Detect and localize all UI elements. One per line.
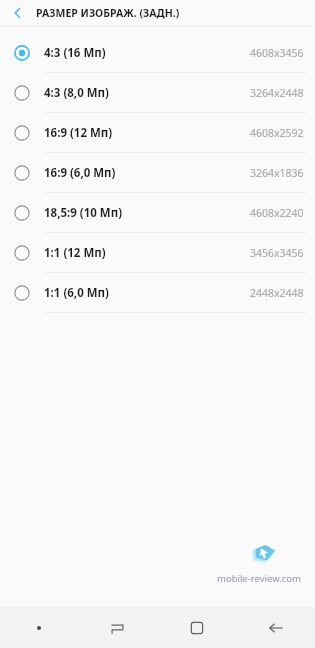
button[interactable]: 1:1 (6,0 Мп) (0, 273, 315, 312)
button[interactable]: 4:3 (16 Мп) (0, 33, 315, 72)
staticText: 4608x2592 (250, 126, 304, 140)
staticText: 4608x3456 (250, 46, 304, 60)
staticText: 16:9 (6,0 Мп) (44, 165, 116, 181)
staticText: 4:3 (16 Мп) (44, 45, 106, 61)
button[interactable]: 16:9 (6,0 Мп) (0, 153, 315, 192)
staticText: РАЗМЕР ИЗОБРАЖ. (ЗАДН.) (36, 6, 180, 20)
staticText: mobile-review.com (217, 572, 301, 585)
staticText: 2448x2448 (250, 286, 304, 300)
staticText: 18,5:9 (10 Мп) (44, 205, 123, 221)
button[interactable]: Back (236, 607, 315, 648)
staticText: 4608x2240 (250, 206, 304, 220)
button[interactable]: 1:1 (12 Мп) (0, 233, 315, 272)
staticText: 4:3 (8,0 Мп) (44, 85, 109, 101)
button[interactable]: 16:9 (12 Мп) (0, 113, 315, 152)
staticText: 1:1 (6,0 Мп) (44, 285, 109, 301)
button[interactable]: 18,5:9 (10 Мп) (0, 193, 315, 232)
staticText: 1:1 (12 Мп) (44, 245, 106, 261)
staticText: 3264x1836 (250, 166, 304, 180)
staticText: 3456x3456 (250, 246, 304, 260)
staticText: 16:9 (12 Мп) (44, 125, 113, 141)
button[interactable]: 4:3 (8,0 Мп) (0, 73, 315, 112)
button[interactable]: Recent apps (78, 607, 157, 648)
button[interactable]: Navigation hint (0, 607, 78, 648)
button[interactable]: Home (157, 607, 236, 648)
staticText: 3264x2448 (250, 86, 304, 100)
button[interactable]: Back (0, 0, 36, 26)
